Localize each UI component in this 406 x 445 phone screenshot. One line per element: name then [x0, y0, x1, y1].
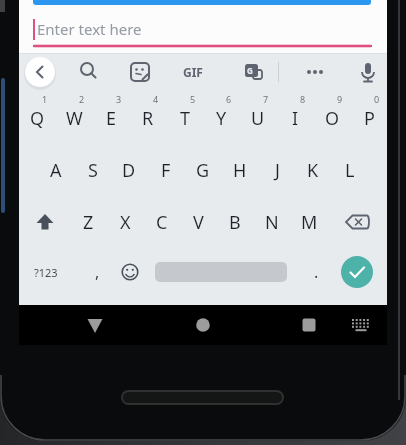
staticText: B — [229, 210, 241, 235]
button[interactable]: O — [314, 93, 350, 143]
button[interactable]: Enter text here — [29, 12, 377, 48]
button[interactable]: P — [351, 93, 387, 143]
button[interactable]: K — [295, 145, 331, 195]
staticText: , — [95, 261, 100, 283]
button[interactable]: . — [298, 254, 334, 290]
staticText: G — [247, 65, 253, 76]
button[interactable]: , — [79, 254, 115, 290]
button[interactable]: R — [130, 93, 166, 143]
button[interactable] — [76, 59, 100, 83]
button[interactable]: X — [107, 197, 143, 247]
staticText: I — [292, 106, 299, 131]
button[interactable]: L — [332, 145, 368, 195]
button[interactable]: H — [222, 145, 258, 195]
button[interactable] — [347, 311, 375, 339]
button[interactable]: S — [75, 145, 111, 195]
button[interactable] — [25, 57, 55, 87]
staticText: X — [120, 210, 131, 235]
staticText: P — [364, 106, 375, 131]
staticText: V — [193, 210, 204, 235]
button[interactable]: G — [185, 145, 221, 195]
button[interactable] — [128, 60, 152, 84]
staticText: 8 — [300, 93, 306, 105]
button[interactable]: V — [180, 197, 216, 247]
button[interactable] — [303, 60, 327, 84]
button[interactable] — [341, 256, 373, 288]
staticText: G — [196, 158, 210, 183]
button[interactable]: Z — [70, 197, 106, 247]
staticText: Z — [83, 210, 94, 235]
button[interactable]: Q — [19, 93, 55, 143]
staticText: S — [88, 158, 98, 183]
staticText: 9 — [337, 93, 343, 105]
staticText: Y — [216, 106, 227, 131]
button[interactable]: M — [291, 197, 327, 247]
staticText: Enter text here — [37, 19, 142, 39]
button[interactable]: C — [144, 197, 180, 247]
staticText: D — [122, 158, 136, 183]
staticText: GIF — [183, 64, 203, 80]
button[interactable]: I — [277, 93, 313, 143]
staticText: ?123 — [34, 265, 58, 280]
button[interactable]: J — [259, 145, 295, 195]
staticText: N — [265, 210, 279, 235]
staticText: R — [142, 106, 154, 131]
button[interactable]: T — [167, 93, 203, 143]
staticText: K — [307, 158, 319, 183]
button[interactable]: B — [217, 197, 253, 247]
button[interactable] — [27, 204, 63, 240]
staticText: U — [251, 106, 265, 131]
staticText: C — [156, 210, 168, 235]
staticText: 6 — [226, 93, 232, 105]
button[interactable] — [291, 307, 327, 343]
staticText: 3 — [116, 93, 122, 105]
staticText: 2 — [79, 93, 85, 105]
button[interactable]: G — [241, 60, 265, 84]
button[interactable] — [112, 254, 148, 290]
staticText: J — [275, 158, 280, 183]
staticText: . — [314, 261, 319, 283]
button[interactable]: Y — [203, 93, 239, 143]
staticText: H — [233, 158, 247, 183]
button[interactable]: D — [111, 145, 147, 195]
staticText: W — [66, 106, 83, 131]
staticText: 0 — [374, 93, 380, 105]
button[interactable] — [356, 59, 380, 85]
staticText: 4 — [153, 93, 159, 105]
button[interactable] — [77, 307, 113, 343]
button[interactable]: U — [240, 93, 276, 143]
button[interactable]: N — [254, 197, 290, 247]
staticText: L — [345, 158, 355, 183]
button[interactable]: F — [148, 145, 184, 195]
button[interactable]: E — [93, 93, 129, 143]
staticText: 5 — [190, 93, 196, 105]
button[interactable]: GIF — [175, 62, 211, 82]
button[interactable] — [339, 204, 375, 240]
button[interactable] — [185, 307, 221, 343]
staticText: T — [180, 106, 191, 131]
button[interactable]: W — [56, 93, 92, 143]
staticText: 1 — [42, 93, 48, 105]
button[interactable]: ?123 — [27, 254, 65, 290]
staticText: 7 — [263, 93, 269, 105]
staticText: M — [301, 210, 318, 235]
button[interactable]: A — [38, 145, 74, 195]
staticText: Q — [30, 106, 45, 131]
staticText: F — [161, 158, 171, 183]
staticText: A — [50, 158, 62, 183]
staticText: O — [325, 106, 340, 131]
staticText: E — [106, 106, 117, 131]
